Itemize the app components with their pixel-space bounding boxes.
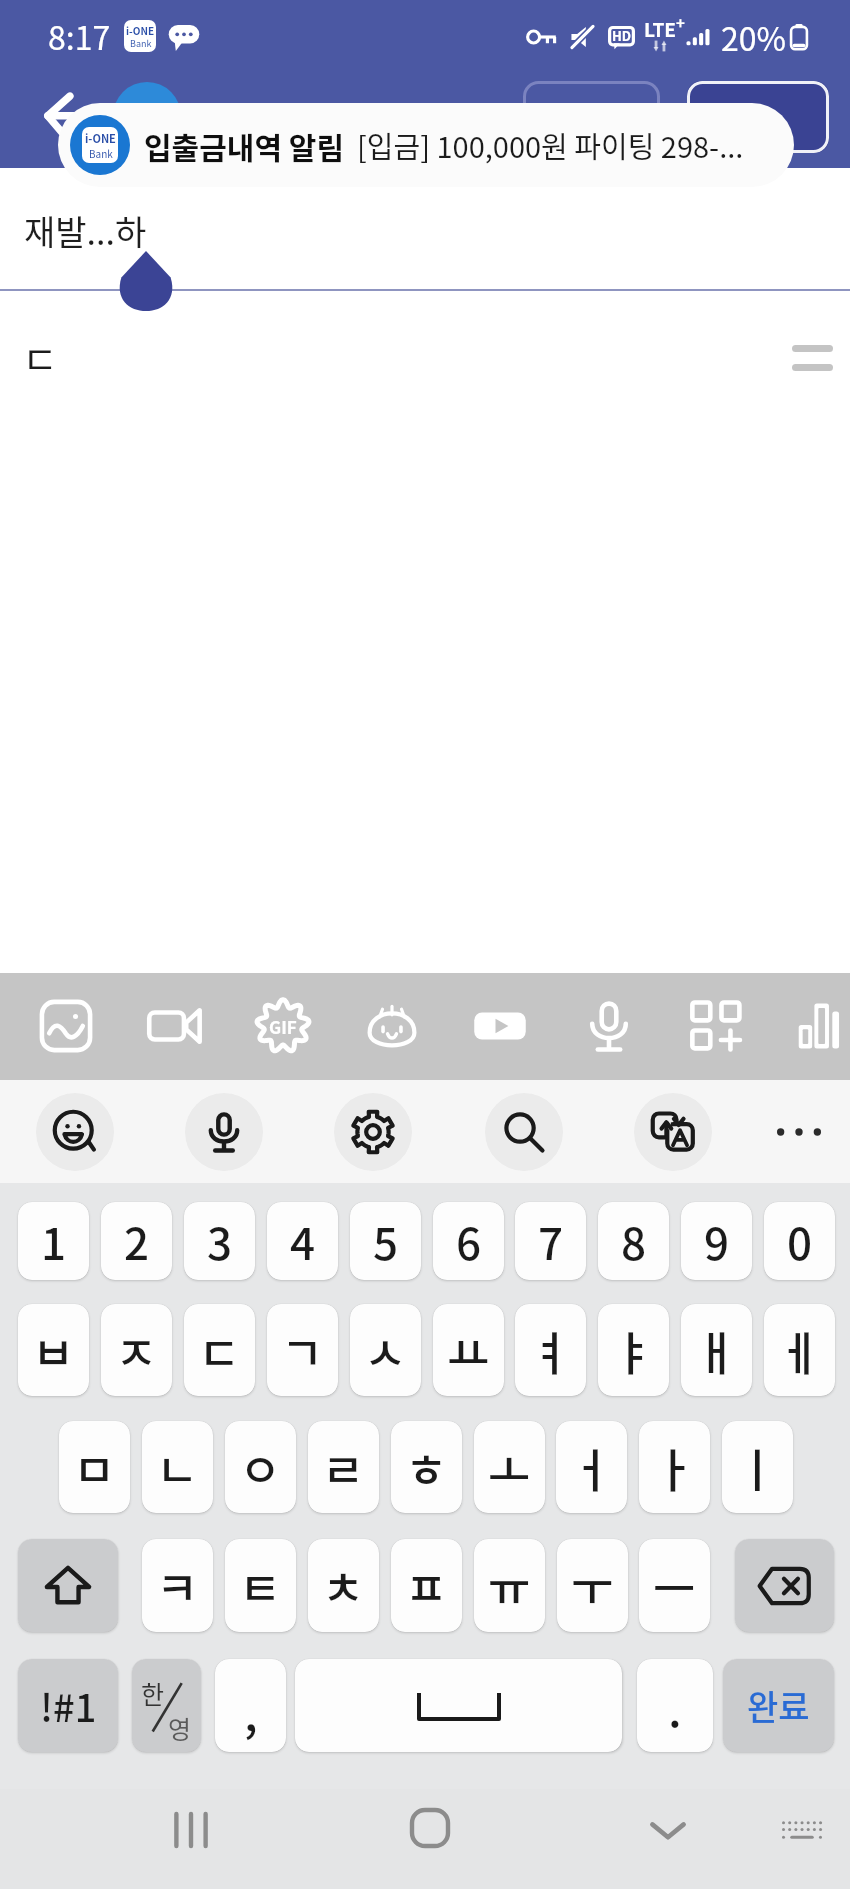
button[interactable]: More options — [760, 1093, 838, 1171]
button[interactable]: 완료 — [723, 1659, 834, 1752]
staticText: ㅛ — [447, 1317, 490, 1384]
button[interactable]: Language — [132, 1659, 201, 1752]
staticText: ㅐ — [695, 1317, 738, 1384]
button[interactable]: Keyboard — [767, 1795, 837, 1865]
button[interactable]: ㅐ — [681, 1304, 752, 1396]
button[interactable]: . — [637, 1659, 713, 1752]
staticText: 1 — [41, 1209, 67, 1273]
staticText: ㅎ — [405, 1434, 448, 1501]
button[interactable]: 7 — [515, 1202, 586, 1280]
button[interactable]: i-ONE — [58, 103, 794, 187]
staticText: , — [244, 1678, 258, 1745]
staticText: ㅅ — [364, 1317, 407, 1384]
staticText: ㅇ — [239, 1434, 282, 1501]
button[interactable]: Hide keyboard — [633, 1794, 703, 1864]
staticText: 영 — [168, 1710, 192, 1746]
button[interactable]: !#1 — [18, 1659, 118, 1752]
staticText: 재발...하 — [24, 206, 147, 255]
button[interactable]: Backspace — [735, 1539, 834, 1632]
button[interactable]: Recents — [156, 1795, 226, 1865]
button[interactable]: Space — [295, 1659, 622, 1752]
staticText: 7 — [538, 1209, 564, 1273]
staticText: + — [676, 12, 684, 34]
staticText: 4 — [290, 1209, 316, 1273]
button[interactable]: Emoji — [36, 1093, 114, 1171]
button[interactable]: ㅌ — [225, 1539, 296, 1632]
button[interactable]: ㄹ — [308, 1421, 379, 1513]
staticText: ㄹ — [322, 1434, 365, 1501]
staticText: . — [668, 1674, 682, 1741]
button[interactable]: Home — [395, 1793, 465, 1863]
button[interactable]: ㅠ — [474, 1539, 545, 1632]
button[interactable]: Voice input — [185, 1093, 263, 1171]
staticText: ㅋ — [156, 1552, 199, 1619]
button[interactable]: ㅈ — [101, 1304, 172, 1396]
button[interactable]: Translate — [634, 1093, 712, 1171]
button[interactable]: 1 — [18, 1202, 89, 1280]
button[interactable]: 0 — [764, 1202, 835, 1280]
button[interactable]: 5 — [350, 1202, 421, 1280]
button[interactable]: YouTube — [456, 982, 544, 1070]
staticText: ㄷ — [198, 1317, 241, 1384]
button[interactable]: 8 — [598, 1202, 669, 1280]
staticText: ㅈ — [115, 1317, 158, 1384]
button[interactable]: 6 — [433, 1202, 504, 1280]
button[interactable]: ㅏ — [639, 1421, 710, 1513]
button[interactable]: , — [215, 1659, 286, 1752]
button[interactable]: ㅛ — [433, 1304, 504, 1396]
button[interactable]: ㅔ — [764, 1304, 835, 1396]
staticText: ㅗ — [488, 1434, 531, 1501]
button[interactable]: ㅣ — [722, 1421, 793, 1513]
button[interactable]: ㅂ — [18, 1304, 89, 1396]
button[interactable]: 3 — [184, 1202, 255, 1280]
staticText: HD — [612, 26, 632, 45]
staticText: 9 — [704, 1209, 730, 1273]
button[interactable]: Apps — [673, 982, 761, 1070]
button[interactable]: ㄴ — [142, 1421, 213, 1513]
button[interactable]: Shift — [18, 1539, 118, 1632]
button[interactable]: ㅜ — [557, 1539, 628, 1632]
button[interactable]: Back — [38, 88, 96, 146]
button[interactable]: Call — [523, 81, 660, 153]
staticText: ㅣ — [736, 1434, 779, 1501]
button[interactable]: ㅅ — [350, 1304, 421, 1396]
button[interactable]: 9 — [681, 1202, 752, 1280]
button[interactable]: ㅋ — [142, 1539, 213, 1632]
staticText: 2 — [124, 1209, 150, 1273]
button[interactable]: 2 — [101, 1202, 172, 1280]
button[interactable]: ㅇ — [225, 1421, 296, 1513]
staticText: Bank — [130, 37, 152, 50]
button[interactable]: Emoticon — [348, 982, 436, 1070]
staticText: ㅍ — [405, 1552, 448, 1619]
button[interactable]: ㅓ — [556, 1421, 627, 1513]
staticText: 한 — [141, 1675, 165, 1711]
button[interactable]: ㅎ — [391, 1421, 462, 1513]
staticText: ㅂ — [32, 1317, 75, 1384]
button[interactable]: Settings — [334, 1093, 412, 1171]
staticText: ㅊ — [322, 1552, 365, 1619]
button[interactable]: Voice — [565, 982, 653, 1070]
staticText: ㅏ — [653, 1434, 696, 1501]
button[interactable]: ㅁ — [59, 1421, 130, 1513]
staticText: ㅜ — [571, 1552, 614, 1619]
button[interactable]: ㄷ — [184, 1304, 255, 1396]
button[interactable]: ㄱ — [267, 1304, 338, 1396]
staticText: LTE — [644, 15, 676, 43]
button[interactable]: ㅍ — [391, 1539, 462, 1632]
button[interactable]: ㅗ — [474, 1421, 545, 1513]
staticText: ㄴ — [156, 1434, 199, 1501]
button[interactable]: Search — [485, 1093, 563, 1171]
button[interactable]: ㅑ — [598, 1304, 669, 1396]
staticText: ㄱ — [281, 1317, 324, 1384]
button[interactable]: ㅕ — [515, 1304, 586, 1396]
button[interactable]: Menu — [687, 81, 829, 153]
staticText: ㅔ — [778, 1317, 821, 1384]
button[interactable]: Video — [131, 982, 219, 1070]
button[interactable]: Sticker — [22, 982, 110, 1070]
staticText: 완료 — [747, 1681, 810, 1730]
button[interactable]: 4 — [267, 1202, 338, 1280]
button[interactable]: GIF — [239, 982, 327, 1070]
button[interactable]: ㅡ — [639, 1539, 710, 1632]
button[interactable]: ㅊ — [308, 1539, 379, 1632]
button[interactable]: Poll — [776, 982, 850, 1070]
